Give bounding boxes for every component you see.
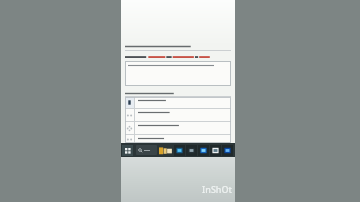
button[interactable]: Mail	[222, 145, 233, 156]
button[interactable]	[136, 145, 157, 155]
button[interactable]: File Explorer	[174, 145, 185, 156]
button[interactable]	[125, 109, 231, 121]
button[interactable]: Settings	[186, 145, 197, 156]
button[interactable]: Start	[122, 145, 133, 156]
button[interactable]: Document	[210, 145, 221, 156]
button[interactable]	[125, 61, 231, 86]
button[interactable]	[125, 97, 231, 108]
button[interactable]: Browser	[198, 145, 209, 156]
button[interactable]	[125, 135, 231, 143]
button[interactable]	[125, 122, 231, 134]
staticText: InShOt	[202, 183, 232, 195]
